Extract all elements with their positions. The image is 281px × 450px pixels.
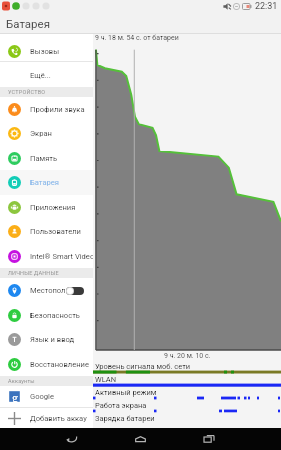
staticText: Зарядка батареи <box>95 414 155 423</box>
staticText: Ещё... <box>30 71 51 80</box>
button[interactable]: Язык и ввод <box>0 327 93 352</box>
staticText: 22:31 <box>255 1 278 12</box>
staticText: Аккаунты <box>8 378 35 384</box>
staticText: 9 ч. 18 м. 54 с. от батареи <box>95 34 179 42</box>
staticText: 9 ч. 20 м. 10 с. <box>164 352 211 360</box>
staticText: Местопол <box>30 286 66 295</box>
staticText: g <box>12 390 18 403</box>
staticText: Приложения <box>30 203 76 212</box>
button[interactable]: Профили звука <box>0 97 93 121</box>
staticText: Intel® Smart Video <box>30 252 93 261</box>
button[interactable]: Recents <box>198 428 220 450</box>
button[interactable]: Память <box>0 146 93 170</box>
staticText: Язык и ввод <box>30 335 75 344</box>
staticText: Экран <box>30 129 52 138</box>
staticText: ЛИЧНЫЕ ДАННЫЕ <box>8 270 59 276</box>
button[interactable]: Экран <box>0 121 93 146</box>
button[interactable]: g <box>0 386 93 407</box>
staticText: Работа экрана <box>95 401 147 410</box>
staticText: Профили звука <box>30 105 85 114</box>
staticText: Активный режим <box>95 388 157 397</box>
staticText: УСТРОЙСТВО <box>8 89 46 95</box>
button[interactable]: Добавить аккау <box>0 408 93 428</box>
button[interactable]: Ещё... <box>0 62 93 87</box>
staticText: Уровень сигнала моб. сети <box>95 362 191 371</box>
staticText: Батарея <box>30 178 60 187</box>
staticText: Добавить аккау <box>30 414 87 423</box>
staticText: Безопасность <box>30 311 80 320</box>
button[interactable]: Батарея <box>0 170 93 195</box>
staticText: Восстановление <box>30 360 89 369</box>
staticText: Google <box>30 392 54 401</box>
button[interactable]: Местопол <box>0 278 93 303</box>
button[interactable]: Home <box>129 428 151 450</box>
staticText: Батарея <box>6 17 50 30</box>
staticText: WLAN <box>95 375 117 384</box>
button[interactable]: Вызовы <box>0 34 93 61</box>
button[interactable]: Intel® Smart Video <box>0 244 93 268</box>
button[interactable]: Back <box>60 428 82 450</box>
staticText: Память <box>30 154 58 163</box>
button[interactable]: Пользователи <box>0 219 93 244</box>
staticText: Пользователи <box>30 227 81 236</box>
staticText: Вызовы <box>30 47 60 56</box>
button[interactable]: Восстановление <box>0 352 93 376</box>
button[interactable]: Безопасность <box>0 303 93 327</box>
button[interactable]: Приложения <box>0 195 93 219</box>
